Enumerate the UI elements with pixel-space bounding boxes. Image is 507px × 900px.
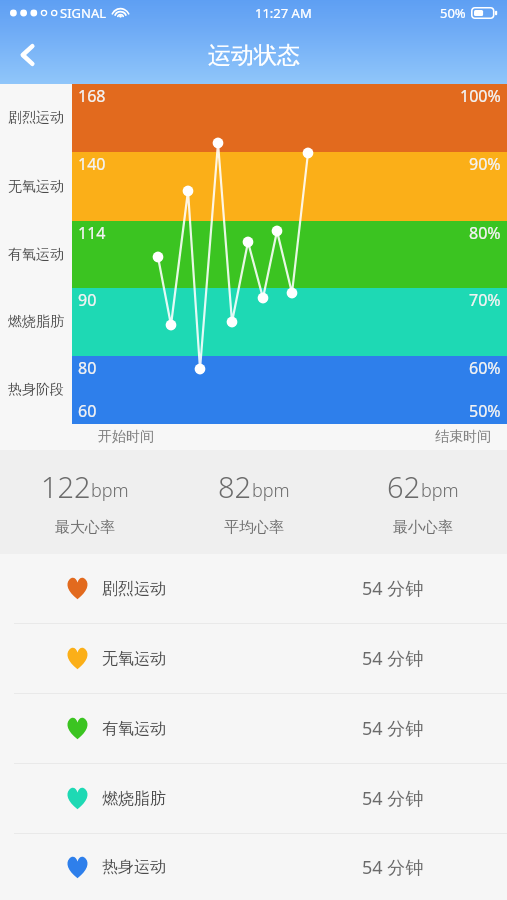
staticText: 11:27 AM — [255, 4, 312, 22]
staticText: 平均心率 — [224, 518, 284, 537]
staticText: 有氧运动 — [102, 719, 166, 739]
staticText: 90 — [78, 289, 97, 311]
staticText: 结束时间 — [435, 428, 491, 446]
staticText: 最大心率 — [55, 518, 115, 537]
staticText: 燃烧脂肪 — [102, 789, 166, 809]
staticText: 70% — [469, 289, 501, 311]
button[interactable]: 剧烈运动 — [0, 554, 507, 623]
staticText: 运动状态 — [208, 41, 300, 70]
staticText: 100% — [460, 85, 501, 107]
staticText: 最小心率 — [393, 518, 453, 537]
staticText: 无氧运动 — [102, 649, 166, 669]
staticText: 54 分钟 — [362, 855, 424, 880]
staticText: 122 — [41, 467, 91, 506]
button[interactable]: 燃烧脂肪 — [0, 764, 507, 833]
staticText: 50% — [440, 4, 466, 22]
staticText: 54 分钟 — [362, 716, 424, 741]
button[interactable]: Back — [4, 31, 52, 79]
staticText: 80% — [469, 222, 501, 244]
staticText: 开始时间 — [98, 428, 154, 446]
staticText: 50% — [469, 400, 501, 422]
staticText: 剧烈运动 — [102, 579, 166, 599]
staticText: 168 — [78, 85, 106, 107]
staticText: 82 — [218, 467, 252, 506]
staticText: 114 — [78, 222, 106, 244]
staticText: 热身运动 — [102, 857, 166, 877]
staticText: 54 分钟 — [362, 576, 424, 601]
staticText: 燃烧脂肪 — [8, 313, 64, 331]
staticText: 有氧运动 — [8, 246, 64, 264]
button[interactable]: 无氧运动 — [0, 624, 507, 693]
staticText: 54 分钟 — [362, 786, 424, 811]
staticText: 80 — [78, 357, 97, 379]
staticText: 60 — [78, 400, 97, 422]
staticText: 140 — [78, 153, 106, 175]
staticText: bpm — [252, 478, 290, 503]
staticText: 60% — [469, 357, 501, 379]
button[interactable]: 热身运动 — [0, 834, 507, 900]
staticText: 无氧运动 — [8, 178, 64, 196]
staticText: 热身阶段 — [8, 381, 64, 399]
staticText: 剧烈运动 — [8, 109, 64, 127]
staticText: bpm — [421, 478, 459, 503]
button[interactable]: 有氧运动 — [0, 694, 507, 763]
button[interactable]: 122 — [0, 450, 169, 554]
staticText: 54 分钟 — [362, 646, 424, 671]
staticText: 62 — [387, 467, 421, 506]
staticText: 90% — [469, 153, 501, 175]
staticText: bpm — [91, 478, 129, 503]
staticText: SIGNAL — [60, 4, 107, 22]
button[interactable]: 82 — [169, 450, 338, 554]
button[interactable]: 62 — [338, 450, 507, 554]
